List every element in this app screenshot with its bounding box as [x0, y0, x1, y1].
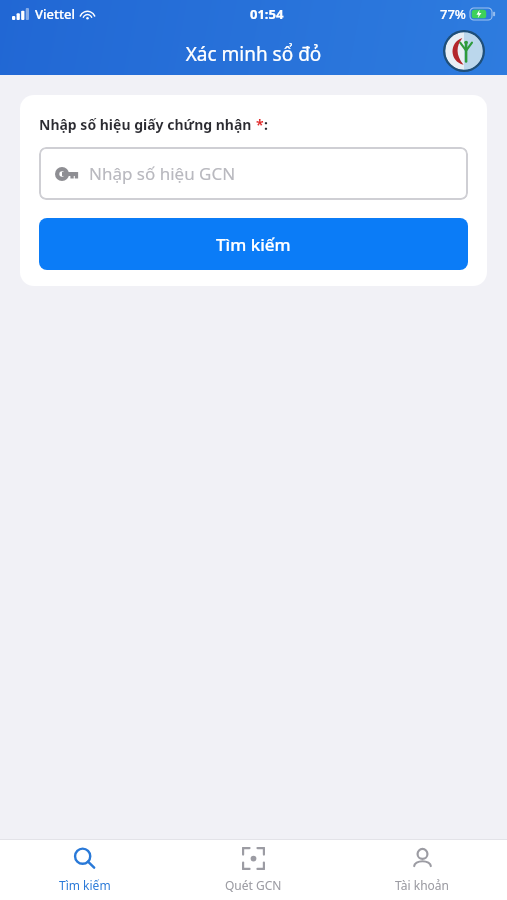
staticText: 01:54 [250, 5, 284, 23]
button[interactable]: Quét GCN [169, 840, 338, 900]
button[interactable]: Tìm kiếm [0, 840, 169, 900]
staticText: Nhập số hiệu giấy chứng nhận [39, 115, 256, 134]
button[interactable]: Nhập số hiệu GCN [39, 147, 468, 200]
staticText: 77% [440, 5, 466, 23]
staticText: Viettel [35, 5, 75, 23]
button[interactable]: Logo [443, 30, 485, 72]
staticText: : [264, 115, 268, 134]
staticText: Quét GCN [225, 877, 282, 893]
staticText: Tìm kiếm [59, 877, 111, 893]
staticText: Tìm kiếm [216, 233, 291, 256]
staticText: Tài khoản [395, 877, 450, 893]
staticText: * [256, 115, 264, 134]
staticText: Nhập số hiệu GCN [89, 162, 236, 185]
staticText: Xác minh sổ đỏ [0, 41, 507, 67]
button[interactable]: Tìm kiếm [39, 218, 468, 270]
button[interactable]: Tài khoản [338, 840, 507, 900]
